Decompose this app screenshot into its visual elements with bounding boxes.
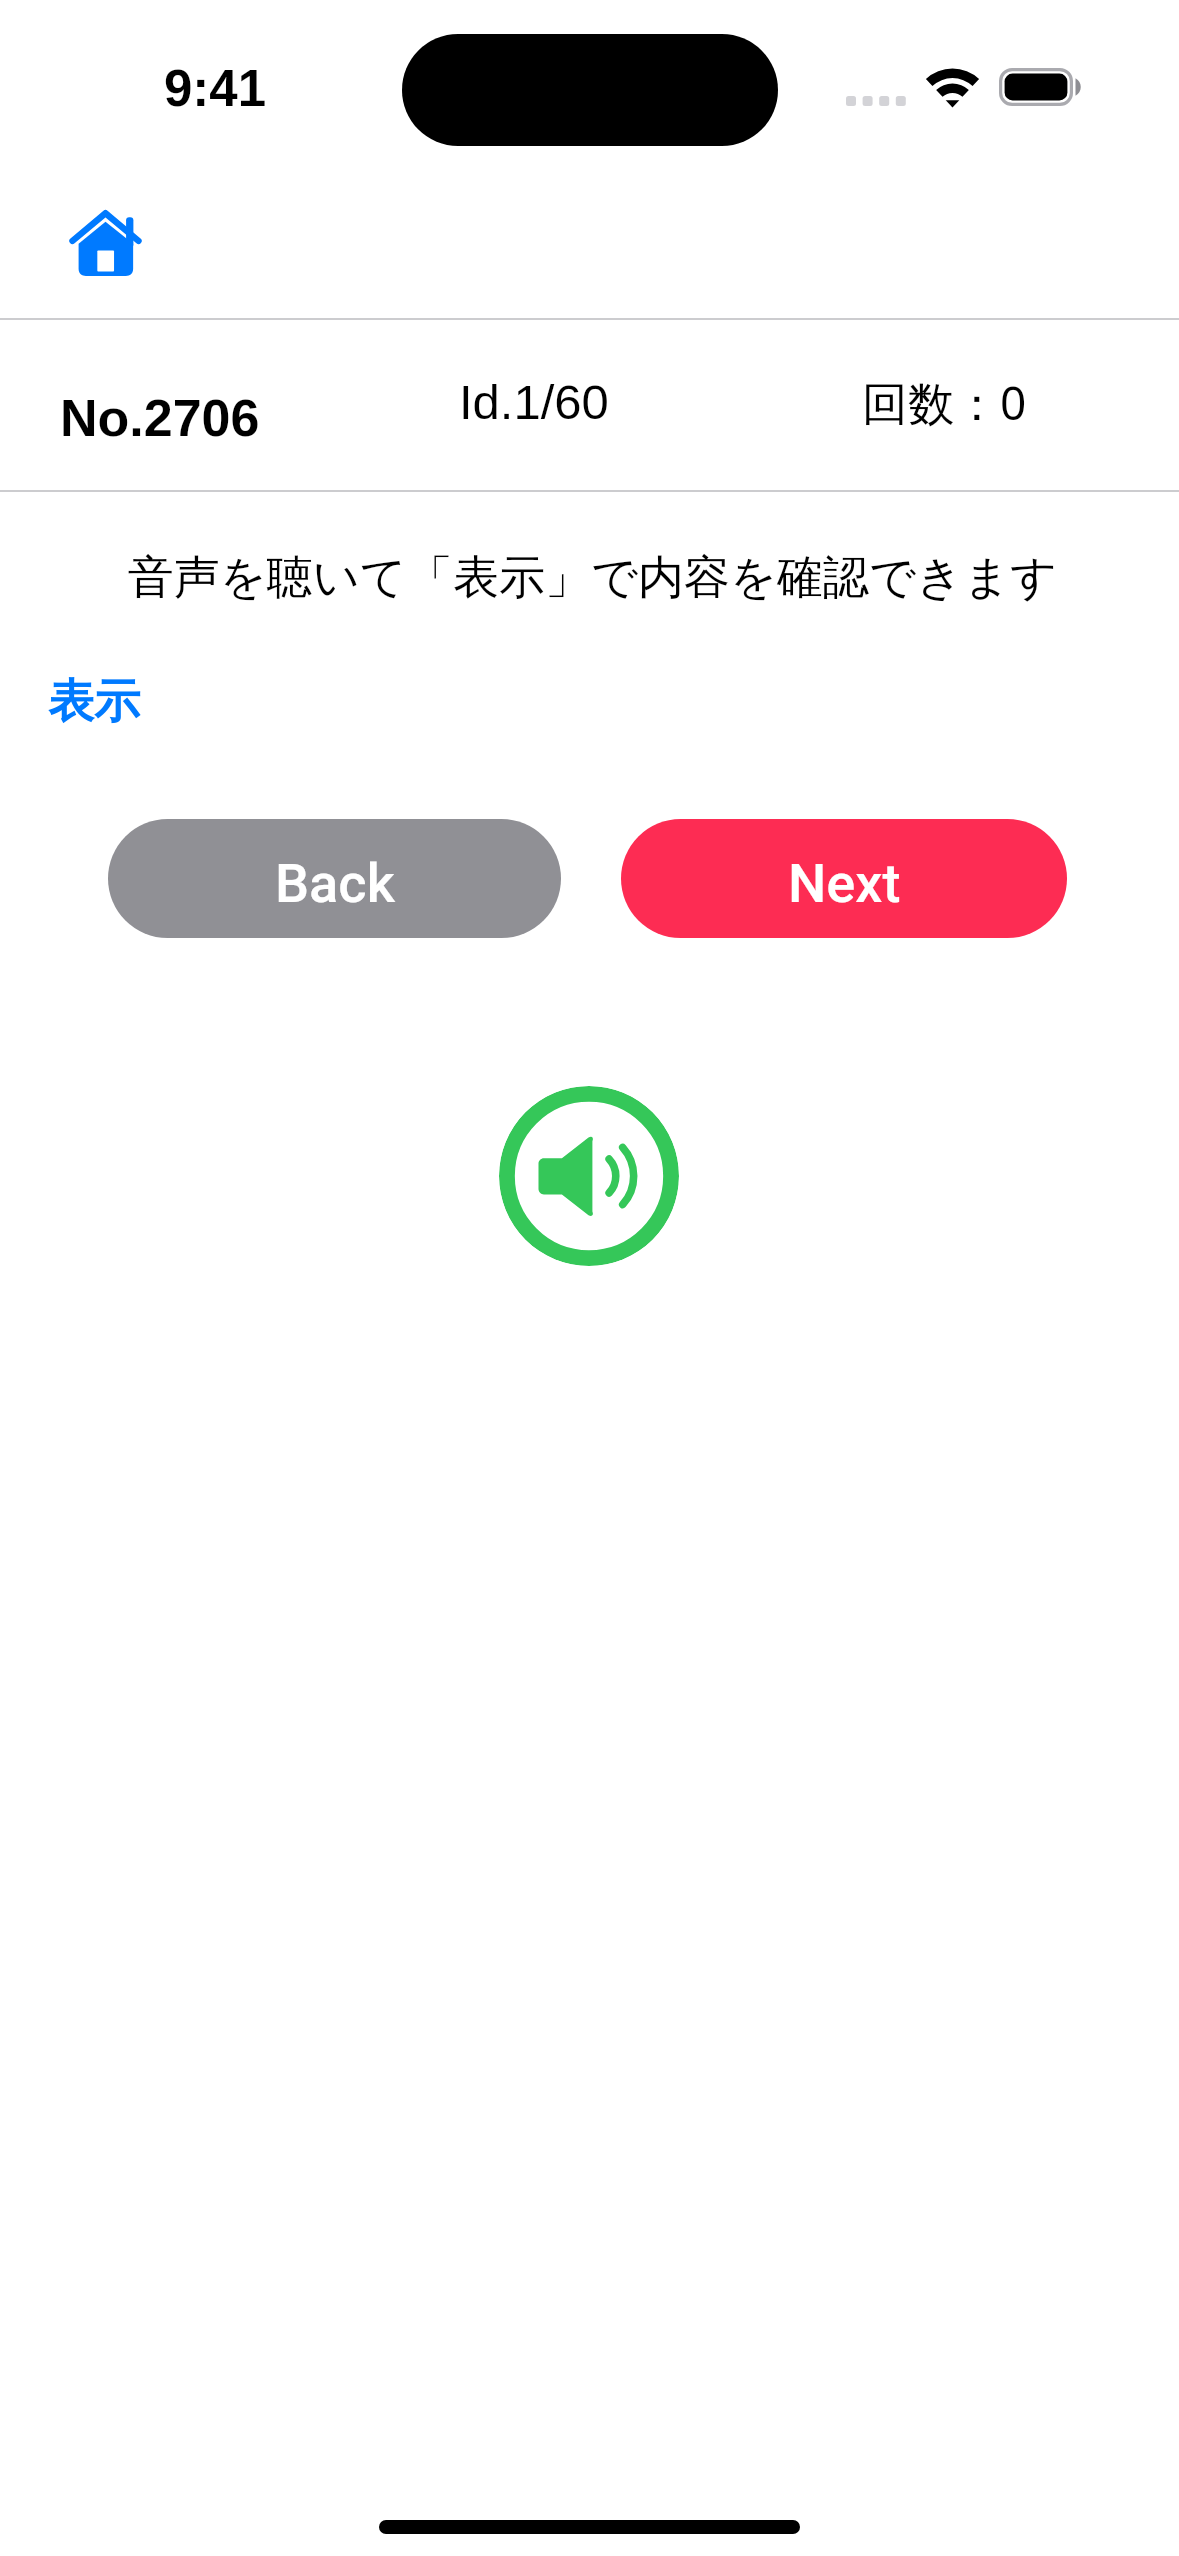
button[interactable]: 表示 [48, 673, 140, 731]
staticText: 回数：0 [862, 371, 1027, 434]
staticText: 9:41 [164, 60, 267, 117]
staticText: Next [788, 852, 901, 915]
button[interactable]: Play audio [499, 1086, 679, 1266]
button[interactable]: Next [621, 819, 1067, 938]
staticText: Back [275, 852, 395, 915]
staticText: No.2706 [60, 389, 260, 447]
button[interactable]: Back [108, 819, 561, 938]
button[interactable]: Home [30, 188, 180, 298]
staticText: Id.1/60 [459, 375, 609, 430]
staticText: 音声を聴いて「表示」で内容を確認できます [3, 549, 1179, 607]
